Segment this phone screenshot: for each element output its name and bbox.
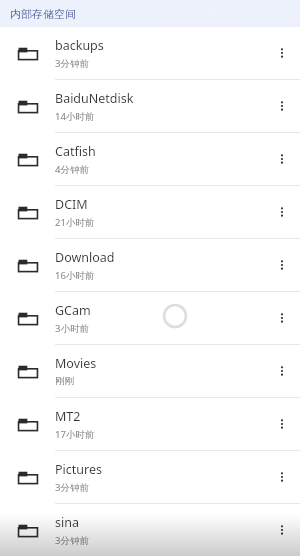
staticText: sina (55, 514, 79, 531)
button[interactable]: Download (0, 239, 300, 291)
button[interactable]: More options (264, 345, 300, 397)
button[interactable]: More options (264, 504, 300, 556)
staticText: backups (55, 37, 104, 54)
staticText: 17小时前 (55, 428, 95, 441)
staticText: 刚刚 (55, 375, 74, 387)
staticText: DCIM (55, 196, 88, 213)
button[interactable]: More options (264, 133, 300, 185)
staticText: Movies (55, 355, 97, 372)
button[interactable]: Movies (0, 345, 300, 397)
button[interactable]: DCIM (0, 186, 300, 238)
button[interactable]: More options (264, 27, 300, 79)
button[interactable]: MT2 (0, 398, 300, 450)
staticText: 14小时前 (55, 110, 95, 123)
staticText: 21小时前 (55, 216, 95, 229)
staticText: 16小时前 (55, 269, 95, 282)
button[interactable]: More options (264, 398, 300, 450)
staticText: BaiduNetdisk (55, 90, 134, 107)
button[interactable]: More options (264, 239, 300, 291)
button[interactable]: More options (264, 80, 300, 132)
staticText: Catfish (55, 143, 96, 160)
staticText: 3分钟前 (55, 534, 89, 547)
staticText: MT2 (55, 408, 81, 425)
button[interactable]: Catfish (0, 133, 300, 185)
button[interactable]: BaiduNetdisk (0, 80, 300, 132)
staticText: 3分钟前 (55, 57, 89, 70)
button[interactable]: Pictures (0, 451, 300, 503)
button[interactable]: More options (264, 451, 300, 503)
button[interactable]: backups (0, 27, 300, 79)
staticText: 内部存储空间 (10, 7, 76, 21)
button[interactable]: More options (264, 292, 300, 344)
staticText: 4分钟前 (55, 163, 89, 176)
staticText: 3小时前 (55, 322, 89, 335)
staticText: 3分钟前 (55, 481, 89, 494)
staticText: GCam (55, 302, 91, 319)
button[interactable]: More options (264, 186, 300, 238)
button[interactable]: sina (0, 504, 300, 556)
staticText: Pictures (55, 461, 102, 478)
button[interactable]: GCam (0, 292, 300, 344)
staticText: Download (55, 249, 115, 266)
